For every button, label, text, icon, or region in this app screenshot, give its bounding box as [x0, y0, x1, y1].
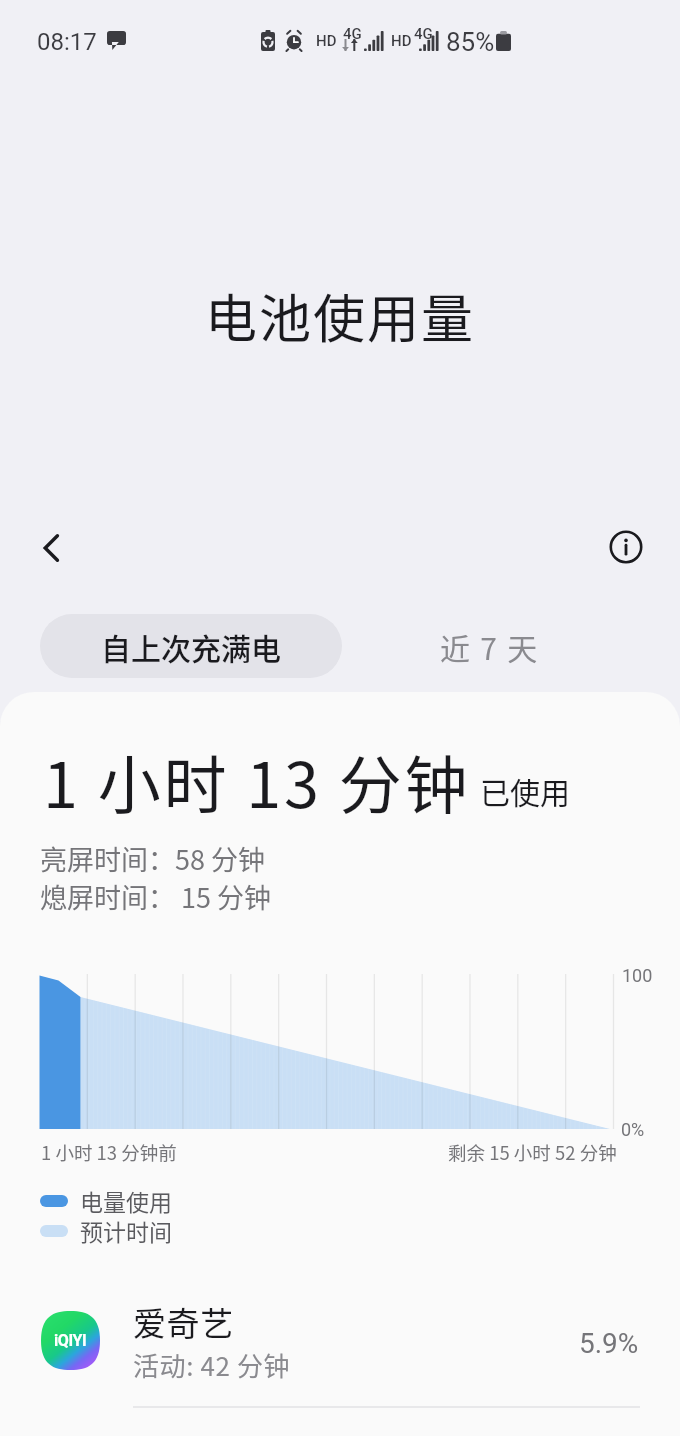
staticText: 5.9%	[579, 1327, 639, 1360]
staticText: 85%	[446, 27, 495, 57]
staticText: 08:17	[37, 28, 97, 56]
staticText: 4G	[414, 25, 433, 43]
button[interactable]: Information	[602, 523, 650, 571]
staticText: 活动: 42 分钟	[133, 1346, 291, 1384]
staticText: 1 小时 13 分钟前	[41, 1139, 177, 1166]
staticText: 0%	[621, 1119, 645, 1140]
staticText: 4G	[343, 25, 362, 43]
staticText: 1 小时 13 分钟	[43, 735, 471, 826]
staticText: 爱奇艺	[133, 1298, 234, 1346]
staticText: 自上次充满电	[101, 625, 281, 668]
button[interactable]: iQIYI	[0, 1290, 680, 1390]
staticText: 已使用	[480, 769, 570, 812]
staticText: 100	[622, 965, 653, 986]
staticText: HD	[316, 32, 337, 50]
button[interactable]: 自上次充满电	[40, 614, 342, 678]
staticText: 预计时间	[80, 1214, 172, 1247]
button[interactable]: Back	[28, 524, 76, 572]
staticText: HD	[391, 32, 412, 50]
staticText: 熄屏时间： 15 分钟	[40, 877, 272, 916]
button[interactable]: 近 7 天	[364, 614, 616, 678]
staticText: 电量使用	[80, 1184, 172, 1217]
staticText: 近 7 天	[440, 625, 540, 668]
staticText: 亮屏时间：58 分钟	[40, 839, 266, 878]
staticText: iQIYI	[54, 1331, 87, 1350]
staticText: 剩余 15 小时 52 分钟	[448, 1139, 617, 1166]
staticText: 电池使用量	[205, 278, 476, 353]
